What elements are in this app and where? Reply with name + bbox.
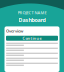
staticText: PROJECT NAME [17,10,46,15]
staticText: Overview [6,28,23,34]
button[interactable]: Continue [6,36,58,41]
staticText: Dashboard [18,16,45,23]
staticText: Continue [22,36,41,41]
